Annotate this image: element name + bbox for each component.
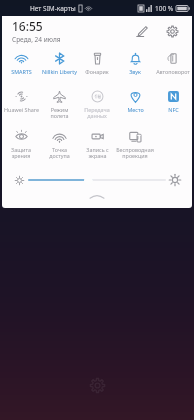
button[interactable]: Edit tiles [130,19,154,43]
staticText: NFC [168,106,179,113]
staticText: 16:55 [12,18,43,34]
button[interactable]: Звук [116,48,154,86]
button[interactable]: Settings [160,19,184,43]
staticText: Фонарик [85,68,109,75]
staticText: Автоповорот [156,68,190,75]
staticText: Huawei Share [4,106,39,113]
button[interactable] [28,170,166,190]
staticText: Нет SIM-карты [30,4,76,13]
button[interactable]: Запись с экрана [78,126,116,166]
staticText: Звук [129,68,141,75]
staticText: 100 % [155,4,174,13]
staticText: Точка доступа [49,146,70,160]
staticText: SMARTS [11,68,32,75]
staticText: Место [127,106,144,113]
button[interactable]: Raise brightness [166,171,184,189]
button[interactable]: Фонарик [78,48,116,86]
button[interactable]: Защита зрения [2,126,40,166]
staticText: Беспроводная проекция [116,146,154,160]
staticText: Передача данных [84,106,110,120]
button[interactable]: Режим полета [40,86,78,126]
button[interactable]: Lower brightness [10,171,28,189]
button[interactable]: Беспроводная проекция [116,126,154,166]
button[interactable]: NFC [154,86,192,126]
staticText: Режим полета [50,106,69,120]
staticText: Запись с экрана [86,146,109,160]
button[interactable]: Передача данных [78,86,116,126]
button[interactable]: Settings [84,372,110,398]
button[interactable]: SMARTS [2,48,40,86]
button[interactable]: Автоповорот [154,48,192,86]
staticText: Защита зрения [11,146,31,160]
button[interactable]: Nillkin Liberty [40,48,78,86]
button[interactable]: Collapse panel [2,191,192,202]
button[interactable]: Huawei Share [2,86,40,126]
staticText: Nillkin Liberty [42,68,77,75]
button[interactable]: Точка доступа [40,126,78,166]
button[interactable]: Место [116,86,154,126]
staticText: Среда, 24 июля [12,35,61,44]
